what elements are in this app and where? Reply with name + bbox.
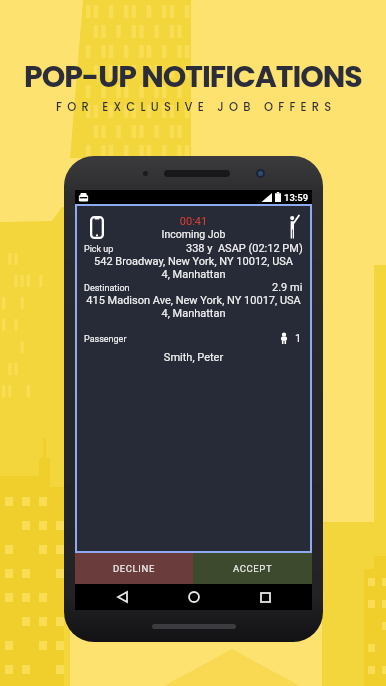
staticText: 1 — [295, 332, 302, 345]
staticText: ACCEPT — [233, 563, 273, 574]
staticText: 13:59 — [284, 192, 309, 203]
staticText: 542 Broadway, New York, NY 10012, USA — [77, 255, 310, 268]
button[interactable]: Back — [97, 584, 147, 610]
staticText: 338 y ASAP (02:12 PM) — [186, 242, 303, 255]
staticText: Smith, Peter — [77, 351, 310, 364]
button[interactable]: ACCEPT — [193, 553, 312, 584]
staticText: Incoming Job — [77, 228, 310, 240]
staticText: 00:41 — [77, 215, 310, 228]
button[interactable]: DECLINE — [75, 553, 193, 584]
staticText: FOR EXCLUSIVE JOB OFFERS — [56, 99, 337, 115]
staticText: 415 Madison Ave, New York, NY 10017, USA — [77, 294, 310, 307]
staticText: 4, Manhattan — [77, 268, 310, 281]
staticText: POP-UP NOTIFICATIONS — [24, 56, 362, 98]
staticText: 4, Manhattan — [77, 307, 310, 320]
staticText: Pick up — [84, 244, 114, 255]
staticText: DECLINE — [113, 563, 155, 574]
staticText: 2.9 mi — [272, 281, 303, 294]
button[interactable]: Home — [169, 584, 219, 610]
staticText: Destination — [84, 283, 130, 294]
staticText: Passenger — [84, 334, 127, 345]
button[interactable]: Recent apps — [240, 584, 290, 610]
